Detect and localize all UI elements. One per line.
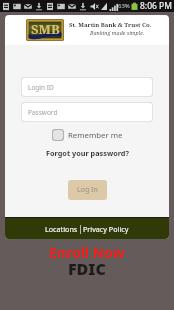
button[interactable]: Log In xyxy=(68,180,107,200)
button[interactable]: Password xyxy=(22,103,152,121)
staticText: 63% xyxy=(118,2,130,10)
button[interactable]: Login ID xyxy=(22,78,152,96)
staticText: Login ID xyxy=(28,83,54,92)
button[interactable]: Locations xyxy=(40,224,80,234)
staticText: Password xyxy=(28,108,58,117)
button[interactable]: Remember me xyxy=(52,129,123,141)
staticText: SMB xyxy=(31,20,60,38)
staticText: Log In xyxy=(77,185,98,195)
button[interactable]: Privacy Policy xyxy=(81,224,134,234)
button[interactable]: Forgot your password? xyxy=(46,148,129,158)
button[interactable]: Enroll Now xyxy=(49,243,125,262)
staticText: 8:06 PM xyxy=(140,0,172,12)
staticText: Remember me xyxy=(68,130,123,141)
staticText: FDIC xyxy=(68,258,106,280)
staticText: St. Martin Bank & Trust Co. xyxy=(69,21,152,29)
staticText: Banking made simple. xyxy=(90,29,145,36)
